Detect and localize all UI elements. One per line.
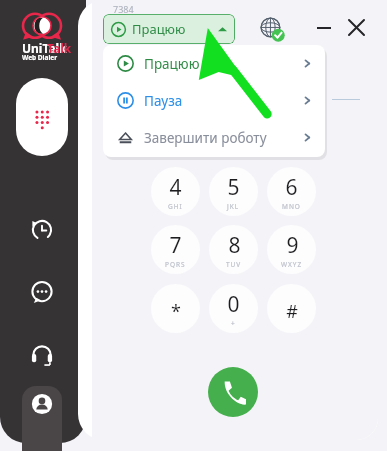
staticText: 5 — [227, 173, 240, 202]
button[interactable]: Minimize — [310, 14, 338, 42]
button[interactable]: * — [151, 284, 200, 333]
button[interactable]: 6 — [267, 167, 316, 216]
staticText: UniTalk — [22, 40, 67, 56]
button[interactable]: Messages — [30, 281, 54, 305]
staticText: Завершити роботу — [144, 129, 267, 147]
staticText: WXYZ — [281, 260, 303, 269]
staticText: MNO — [282, 202, 301, 211]
button[interactable]: Call history — [30, 218, 54, 242]
button[interactable]: Account — [22, 386, 62, 451]
staticText: 9 — [286, 231, 299, 260]
staticText: Web Dialer — [22, 53, 58, 62]
button[interactable]: Завершити роботу — [103, 119, 325, 156]
staticText: 6 — [285, 173, 298, 202]
staticText: 7 — [169, 231, 182, 260]
staticText: + — [231, 319, 236, 328]
staticText: 4 — [169, 173, 182, 202]
staticText: 0 — [227, 290, 240, 319]
button[interactable]: 9 — [267, 225, 316, 274]
button[interactable]: Dialpad — [16, 78, 68, 156]
button[interactable]: 0 — [209, 284, 258, 333]
button[interactable]: 5 — [209, 167, 258, 216]
button[interactable]: 4 — [151, 167, 200, 216]
staticText: # — [286, 299, 298, 324]
staticText: Пауза — [144, 92, 183, 110]
staticText: Talk — [47, 40, 72, 56]
staticText: 7384 — [113, 3, 134, 15]
staticText: GHI — [168, 202, 183, 211]
staticText: JKL — [227, 202, 240, 211]
button[interactable]: 8 — [209, 225, 258, 274]
button[interactable]: Call — [208, 367, 258, 417]
staticText: TUV — [226, 260, 242, 269]
button[interactable]: 7 — [151, 225, 200, 274]
staticText: 8 — [228, 231, 241, 260]
staticText: * — [171, 299, 181, 324]
staticText: PQRS — [165, 260, 186, 269]
button[interactable]: Пауза — [103, 82, 325, 119]
button[interactable]: Close — [342, 13, 370, 41]
button[interactable]: Network status — [259, 16, 285, 42]
staticText: Працюю — [144, 55, 200, 73]
button[interactable]: Працюю — [103, 14, 235, 44]
button[interactable]: # — [267, 284, 316, 333]
button[interactable]: Працюю — [103, 45, 325, 82]
staticText: Працюю — [132, 20, 186, 38]
button[interactable]: Headset — [30, 342, 54, 366]
